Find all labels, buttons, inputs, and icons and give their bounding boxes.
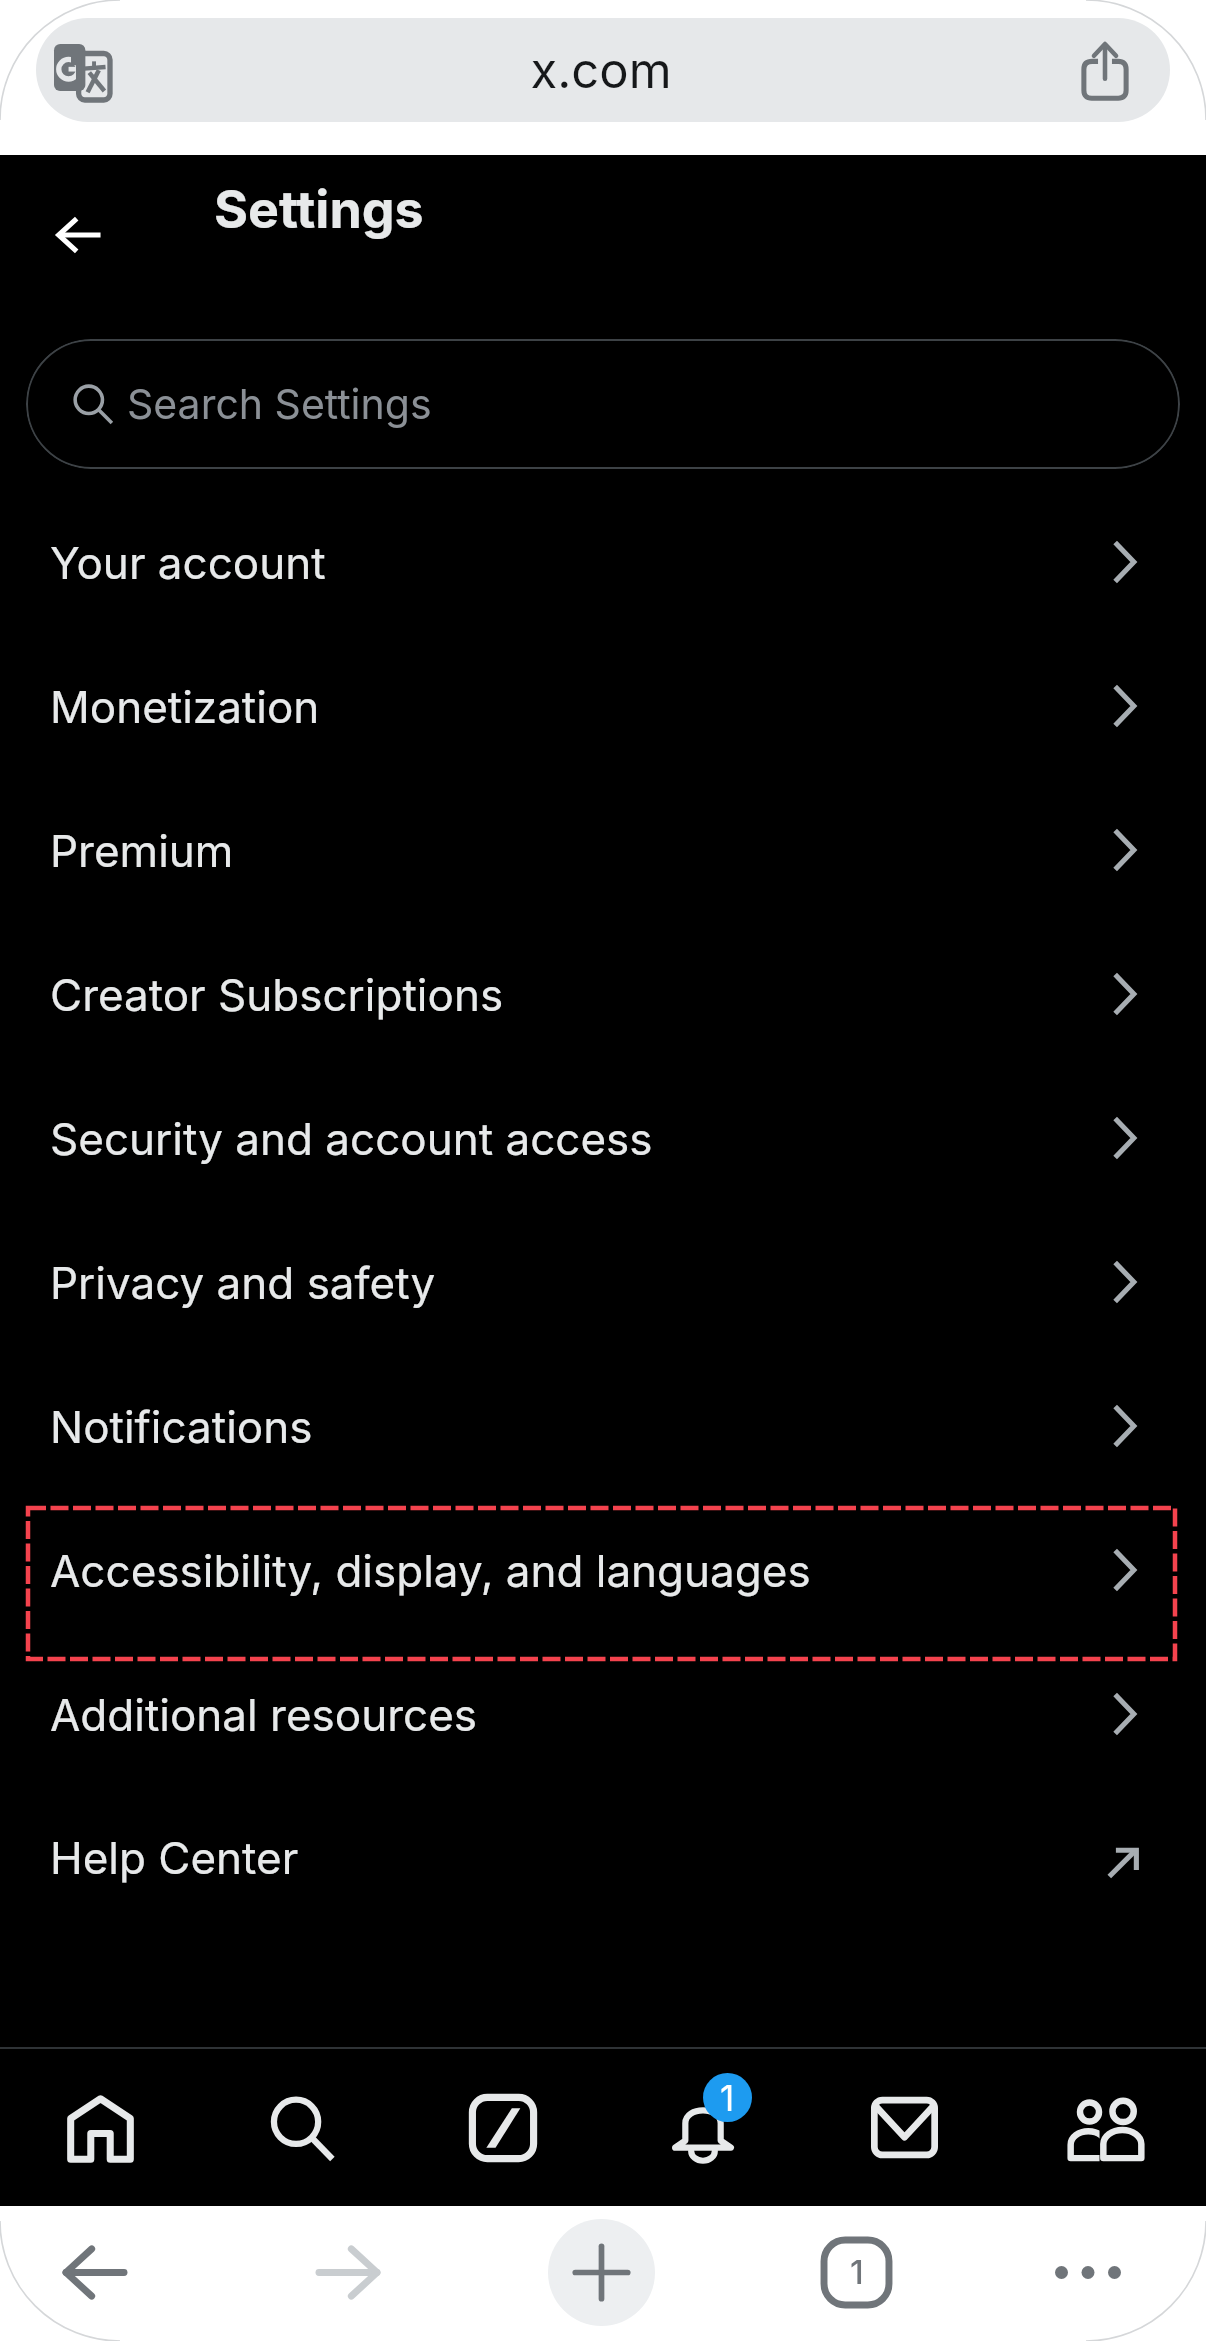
staticText: 1: [850, 2252, 864, 2292]
staticText: Notifications: [50, 1400, 313, 1453]
button[interactable]: Share: [1081, 40, 1129, 102]
button[interactable]: Search Settings: [26, 339, 1180, 469]
button[interactable]: Grok: [402, 2049, 603, 2206]
staticText: Search Settings: [127, 379, 432, 429]
button[interactable]: Tabs: [820, 2236, 893, 2309]
button[interactable]: Home: [0, 2049, 201, 2206]
button[interactable]: Security and account access: [0, 1066, 1206, 1210]
button[interactable]: Help Center: [0, 1785, 1206, 1929]
button[interactable]: Forward: [315, 2245, 381, 2300]
button[interactable]: Messages: [804, 2049, 1005, 2206]
button[interactable]: Premium: [0, 778, 1206, 922]
staticText: Creator Subscriptions: [50, 968, 504, 1021]
staticText: Accessibility, display, and languages: [50, 1544, 811, 1597]
button[interactable]: Translate page: [54, 44, 110, 100]
staticText: Help Center: [50, 1831, 299, 1884]
staticText: 1: [720, 2077, 735, 2119]
staticText: Additional resources: [50, 1688, 478, 1741]
button[interactable]: Additional resources: [0, 1642, 1206, 1786]
button[interactable]: Accessibility, display, and languages: [0, 1498, 1206, 1642]
button[interactable]: More: [1055, 2266, 1121, 2279]
button[interactable]: Your account: [0, 490, 1206, 634]
button[interactable]: Communities: [1005, 2049, 1206, 2206]
button[interactable]: New tab: [548, 2219, 655, 2326]
button[interactable]: Privacy and safety: [0, 1210, 1206, 1354]
staticText: Premium: [50, 824, 234, 877]
button[interactable]: Back: [56, 216, 101, 254]
button[interactable]: Notifications: [603, 2049, 804, 2206]
button[interactable]: Search: [201, 2049, 402, 2206]
staticText: Your account: [50, 536, 326, 589]
staticText: Monetization: [50, 680, 320, 733]
button[interactable]: Notifications: [0, 1354, 1206, 1498]
staticText: Settings: [214, 178, 424, 241]
staticText: Security and account access: [50, 1112, 653, 1165]
staticText: Privacy and safety: [50, 1256, 436, 1309]
button[interactable]: Creator Subscriptions: [0, 922, 1206, 1066]
button[interactable]: Back: [62, 2245, 128, 2300]
button[interactable]: x.com: [36, 18, 1170, 122]
button[interactable]: Monetization: [0, 634, 1206, 778]
staticText: x.com: [530, 41, 672, 100]
